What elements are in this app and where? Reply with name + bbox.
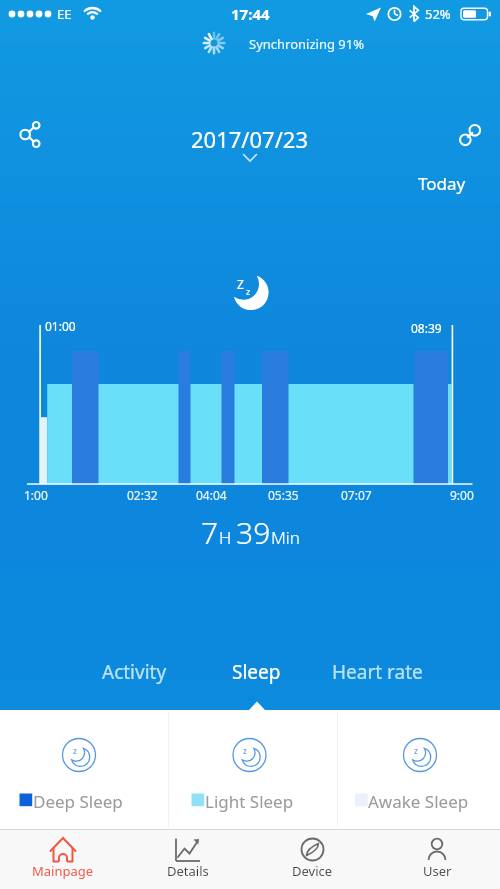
staticText: Mainpage (32, 862, 94, 880)
staticText: User (423, 862, 452, 880)
button[interactable]: Device (250, 830, 375, 889)
button[interactable] (450, 118, 494, 154)
button[interactable]: Mainpage (0, 830, 125, 889)
staticText: 17:44 (231, 4, 270, 24)
staticText: Light Sleep (205, 790, 294, 813)
staticText: 02:32 (127, 487, 158, 503)
staticText: Activity (102, 659, 167, 685)
staticText: 05:35 (268, 487, 299, 503)
staticText: 1:00 (24, 487, 48, 503)
button[interactable] (190, 120, 310, 168)
button[interactable]: Activity (74, 655, 195, 689)
staticText: Details (167, 862, 209, 880)
staticText: 2017/07/23 (191, 124, 309, 154)
staticText: 08:39 (411, 320, 442, 336)
staticText: 9:00 (450, 487, 474, 503)
staticText: Deep Sleep (33, 790, 123, 813)
staticText: z (243, 745, 247, 756)
staticText: 04:04 (196, 487, 227, 503)
staticText: Min (271, 526, 300, 549)
staticText: H (219, 526, 236, 549)
staticText: Sleep (232, 659, 281, 685)
button[interactable]: User (375, 830, 500, 889)
button[interactable] (10, 118, 54, 154)
staticText: z (414, 745, 418, 756)
button[interactable] (408, 166, 488, 200)
staticText: Z (237, 276, 244, 292)
staticText: 7 (201, 512, 219, 553)
staticText: 07:07 (341, 487, 372, 503)
button[interactable]: Details (125, 830, 250, 889)
staticText: z (246, 285, 251, 297)
button[interactable]: Sleep (195, 655, 317, 689)
staticText: 39 (236, 512, 271, 553)
staticText: 01:00 (45, 318, 76, 334)
staticText: EE (57, 5, 72, 23)
staticText: z (73, 745, 77, 756)
staticText: Awake Sleep (368, 790, 469, 813)
staticText: Today (418, 172, 466, 195)
staticText: 52% (425, 5, 451, 23)
button[interactable]: Heart rate (317, 655, 438, 689)
staticText: Heart rate (332, 659, 423, 685)
staticText: Synchronizing 91% (249, 35, 364, 53)
staticText: Device (292, 862, 333, 880)
